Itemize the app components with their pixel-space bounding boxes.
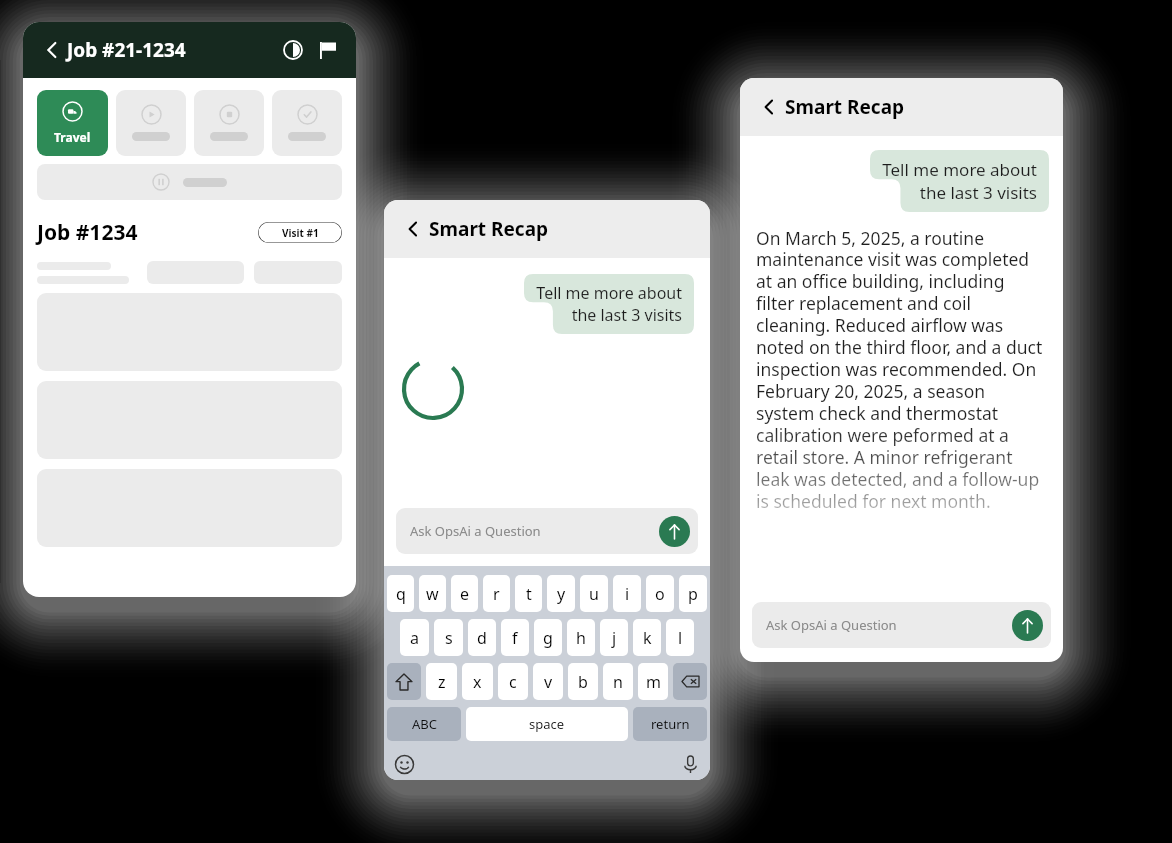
button[interactable]: s xyxy=(434,619,463,656)
button[interactable]: o xyxy=(646,575,674,612)
button[interactable]: Contrast xyxy=(280,37,306,63)
button[interactable]: u xyxy=(580,575,608,612)
staticText: Tell me more about the last 3 visits xyxy=(882,158,1037,204)
button[interactable]: Back xyxy=(400,218,422,240)
button[interactable]: b xyxy=(568,663,598,700)
button[interactable]: e xyxy=(451,575,478,612)
staticText: d xyxy=(477,627,487,649)
staticText: i xyxy=(625,583,630,605)
button[interactable]: m xyxy=(638,663,668,700)
button[interactable]: Flag xyxy=(314,37,340,63)
staticText: c xyxy=(509,671,517,693)
staticText: l xyxy=(678,627,683,649)
staticText: m xyxy=(646,671,661,693)
button[interactable]: y xyxy=(547,575,575,612)
button[interactable]: Back xyxy=(39,39,61,61)
staticText: r xyxy=(493,583,500,605)
button[interactable]: k xyxy=(633,619,661,656)
staticText: h xyxy=(576,627,586,649)
staticText: z xyxy=(438,671,446,693)
button[interactable]: h xyxy=(567,619,595,656)
staticText: On March 5, 2025, a routine maintenance … xyxy=(756,226,1047,513)
button[interactable]: a xyxy=(400,619,429,656)
staticText: Smart Recap xyxy=(429,216,549,242)
button[interactable] xyxy=(272,90,342,156)
button[interactable] xyxy=(37,164,342,200)
button[interactable]: w xyxy=(419,575,446,612)
staticText: j xyxy=(612,627,617,649)
staticText: space xyxy=(529,715,565,733)
button[interactable]: space xyxy=(466,707,628,741)
staticText: q xyxy=(396,583,406,605)
button[interactable]: x xyxy=(462,663,493,700)
button[interactable]: g xyxy=(534,619,562,656)
button[interactable]: c xyxy=(498,663,528,700)
staticText: n xyxy=(613,671,623,693)
button[interactable]: Back xyxy=(756,96,778,118)
staticText: t xyxy=(526,583,532,605)
button[interactable]: v xyxy=(533,663,563,700)
button[interactable]: t xyxy=(515,575,542,612)
button[interactable]: Tell me more about the last 3 visits xyxy=(536,282,682,326)
button[interactable]: f xyxy=(501,619,529,656)
button[interactable]: Ask OpsAi a Question xyxy=(752,602,1051,648)
button[interactable]: i xyxy=(613,575,641,612)
staticText: s xyxy=(445,627,453,649)
button[interactable]: Backspace xyxy=(673,663,707,700)
staticText: Ask OpsAi a Question xyxy=(410,522,541,540)
staticText: Smart Recap xyxy=(785,94,905,120)
staticText: o xyxy=(655,583,665,605)
staticText: Tell me more about the last 3 visits xyxy=(536,282,682,326)
staticText: Job #21-1234 xyxy=(67,37,186,63)
staticText: return xyxy=(651,715,690,733)
staticText: g xyxy=(543,627,553,649)
staticText: e xyxy=(460,583,470,605)
staticText: Ask OpsAi a Question xyxy=(766,616,897,634)
button[interactable]: d xyxy=(468,619,496,656)
button[interactable]: Ask OpsAi a Question xyxy=(396,508,698,554)
staticText: Travel xyxy=(54,129,91,145)
staticText: w xyxy=(426,583,439,605)
staticText: p xyxy=(688,583,698,605)
staticText: f xyxy=(512,627,518,649)
button[interactable]: Voice input xyxy=(679,753,701,775)
button[interactable]: q xyxy=(387,575,414,612)
button[interactable]: j xyxy=(600,619,628,656)
staticText: v xyxy=(544,671,553,693)
button[interactable]: n xyxy=(603,663,633,700)
button[interactable]: Send xyxy=(659,516,690,547)
button[interactable]: return xyxy=(633,707,707,741)
button[interactable]: Travel xyxy=(37,90,108,156)
button[interactable]: z xyxy=(426,663,457,700)
button[interactable]: Shift xyxy=(387,663,421,700)
button[interactable]: Emoji xyxy=(393,753,415,775)
staticText: x xyxy=(473,671,482,693)
staticText: k xyxy=(643,627,652,649)
staticText: y xyxy=(557,583,566,605)
staticText: b xyxy=(578,671,588,693)
button[interactable] xyxy=(194,90,264,156)
button[interactable]: Send xyxy=(1012,610,1043,641)
button[interactable]: l xyxy=(666,619,694,656)
button[interactable]: Visit #1 xyxy=(258,222,342,243)
staticText: u xyxy=(589,583,599,605)
staticText: Visit #1 xyxy=(282,226,319,240)
button[interactable]: Tell me more about the last 3 visits xyxy=(882,158,1037,204)
button[interactable]: ABC xyxy=(387,707,461,741)
staticText: a xyxy=(410,627,419,649)
button[interactable]: p xyxy=(679,575,707,612)
staticText: Job #1234 xyxy=(37,218,138,247)
staticText: ABC xyxy=(412,715,437,733)
button[interactable]: r xyxy=(483,575,510,612)
button[interactable] xyxy=(116,90,186,156)
